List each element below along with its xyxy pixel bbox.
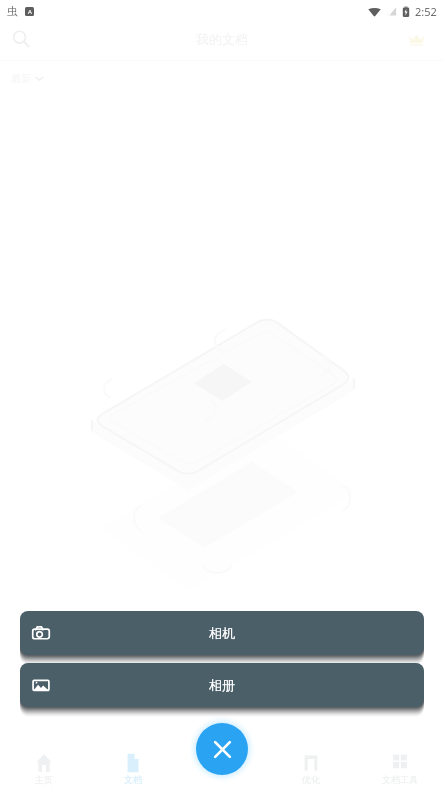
staticText: A — [28, 8, 32, 16]
staticText: 优化 — [302, 774, 320, 785]
button[interactable]: Close — [196, 723, 248, 775]
button[interactable]: 相册 — [20, 663, 424, 707]
staticText: 我的文档 — [196, 31, 248, 47]
button[interactable]: 主页 — [0, 741, 88, 791]
staticText: 文档 — [124, 774, 142, 785]
staticText: 2:52 — [415, 4, 437, 19]
staticText: 文档工具 — [382, 774, 418, 785]
button[interactable]: 最新 — [11, 72, 44, 85]
staticText: 主页 — [35, 774, 53, 785]
button[interactable]: Search — [6, 24, 36, 54]
button[interactable]: 相机 — [20, 611, 424, 655]
staticText: 相机 — [209, 625, 235, 641]
button[interactable]: 文档 — [88, 741, 177, 791]
button[interactable]: VIP — [401, 24, 431, 54]
staticText: 虫 — [7, 4, 18, 18]
staticText: 最新 — [11, 72, 31, 85]
staticText: 相册 — [209, 677, 235, 693]
button[interactable]: 文档工具 — [355, 741, 444, 791]
